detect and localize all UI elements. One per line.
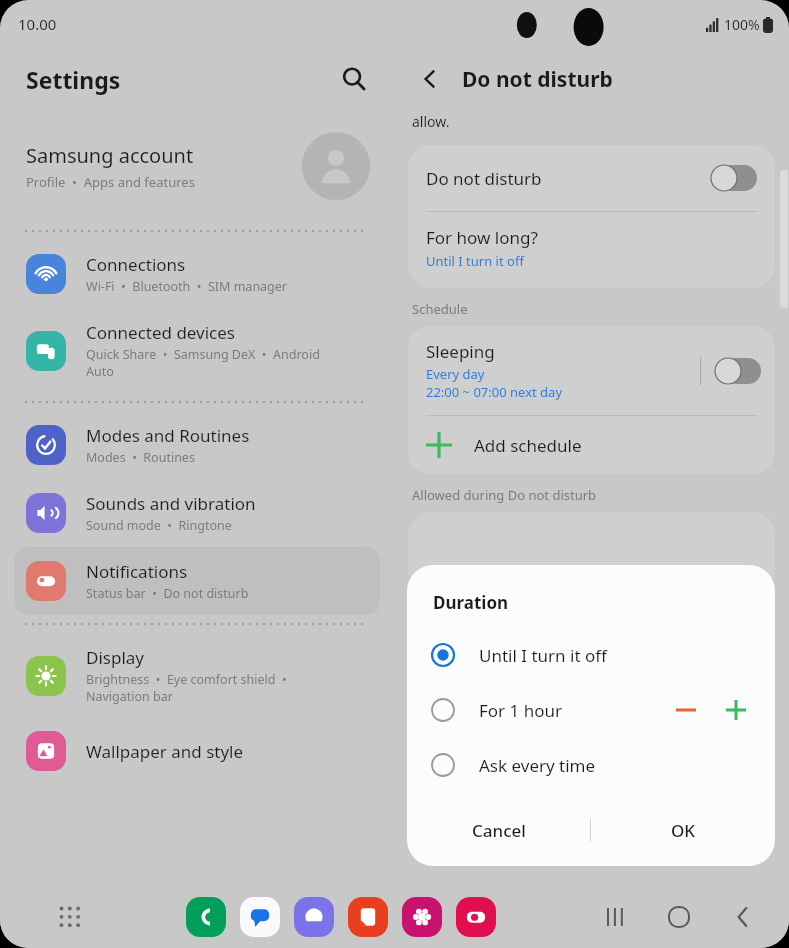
- staticText: Modes • Routines: [86, 449, 195, 466]
- button[interactable]: Connections: [14, 240, 380, 308]
- button[interactable]: Notifications: [14, 547, 380, 615]
- button[interactable]: Modes and Routines: [14, 411, 380, 479]
- staticText: Sound mode • Ringtone: [86, 517, 232, 534]
- button[interactable]: INTERNET: [294, 897, 334, 937]
- button[interactable]: MESSAGES: [240, 897, 280, 937]
- button[interactable]: GALLERY: [402, 897, 442, 937]
- staticText: 22:00 ~ 07:00 next day: [426, 383, 563, 401]
- staticText: Quick Share • Samsung DeX • Android Auto: [86, 346, 320, 380]
- staticText: Ask every time: [479, 754, 753, 777]
- staticText: Do not disturb: [462, 65, 613, 94]
- staticText: Notifications: [86, 560, 188, 583]
- staticText: Cancel: [472, 819, 526, 842]
- staticText: 100%: [724, 15, 760, 34]
- button[interactable]: Back: [723, 897, 763, 937]
- staticText: Modes and Routines: [86, 424, 250, 447]
- staticText: Wi-Fi • Bluetooth • SIM manager: [86, 278, 288, 295]
- button[interactable]: Back: [410, 59, 450, 99]
- button[interactable]: Apps: [52, 899, 88, 935]
- staticText: Connected devices: [86, 321, 236, 344]
- button[interactable]: CAMERA: [456, 897, 496, 937]
- button[interactable]: Do not disturb: [408, 145, 775, 211]
- button[interactable]: Connected devices: [14, 308, 380, 393]
- staticText: Until I turn it off: [426, 252, 524, 270]
- staticText: Every day: [426, 365, 485, 383]
- staticText: Connections: [86, 253, 186, 276]
- button[interactable]: Recents: [595, 897, 635, 937]
- staticText: Schedule: [412, 300, 468, 318]
- staticText: Display: [86, 646, 144, 669]
- staticText: Status bar • Do not disturb: [86, 585, 249, 602]
- button[interactable]: Display: [14, 633, 380, 718]
- staticText: For 1 hour: [479, 699, 669, 722]
- button[interactable]: Until I turn it off: [407, 630, 775, 680]
- button[interactable]: For how long?: [408, 212, 775, 288]
- staticText: Wallpaper and style: [86, 740, 244, 763]
- staticText: For how long?: [426, 226, 538, 249]
- button[interactable]: Search: [334, 59, 374, 99]
- staticText: Sounds and vibration: [86, 492, 256, 515]
- staticText: Brightness • Eye comfort shield • Naviga…: [86, 671, 287, 705]
- staticText: Samsung account: [26, 142, 194, 169]
- staticText: Duration: [433, 591, 509, 614]
- button[interactable]: Ask every time: [407, 740, 775, 790]
- button[interactable]: Samsung account: [0, 110, 394, 222]
- staticText: Add schedule: [474, 434, 582, 457]
- button[interactable]: For 1 hour: [407, 680, 775, 740]
- button[interactable]: PHONE: [186, 897, 226, 937]
- staticText: Do not disturb: [426, 167, 711, 190]
- staticText: Profile • Apps and features: [26, 173, 195, 191]
- button[interactable]: FILES: [348, 897, 388, 937]
- button[interactable]: OK: [591, 804, 775, 856]
- staticText: Until I turn it off: [479, 644, 753, 667]
- staticText: 10.00: [18, 14, 57, 34]
- staticText: Allowed during Do not disturb: [412, 486, 597, 504]
- button[interactable]: Sleeping: [408, 326, 775, 415]
- staticText: allow.: [412, 112, 450, 131]
- button[interactable]: Wallpaper and style: [14, 718, 380, 784]
- button[interactable]: Add schedule: [408, 416, 775, 474]
- staticText: Sleeping: [426, 340, 495, 363]
- button[interactable]: Increase: [719, 693, 753, 727]
- button[interactable]: Decrease: [669, 693, 703, 727]
- button[interactable]: Sounds and vibration: [14, 479, 380, 547]
- staticText: OK: [671, 819, 696, 842]
- button[interactable]: Cancel: [407, 804, 590, 856]
- button[interactable]: Home: [659, 897, 699, 937]
- staticText: Settings: [26, 64, 334, 95]
